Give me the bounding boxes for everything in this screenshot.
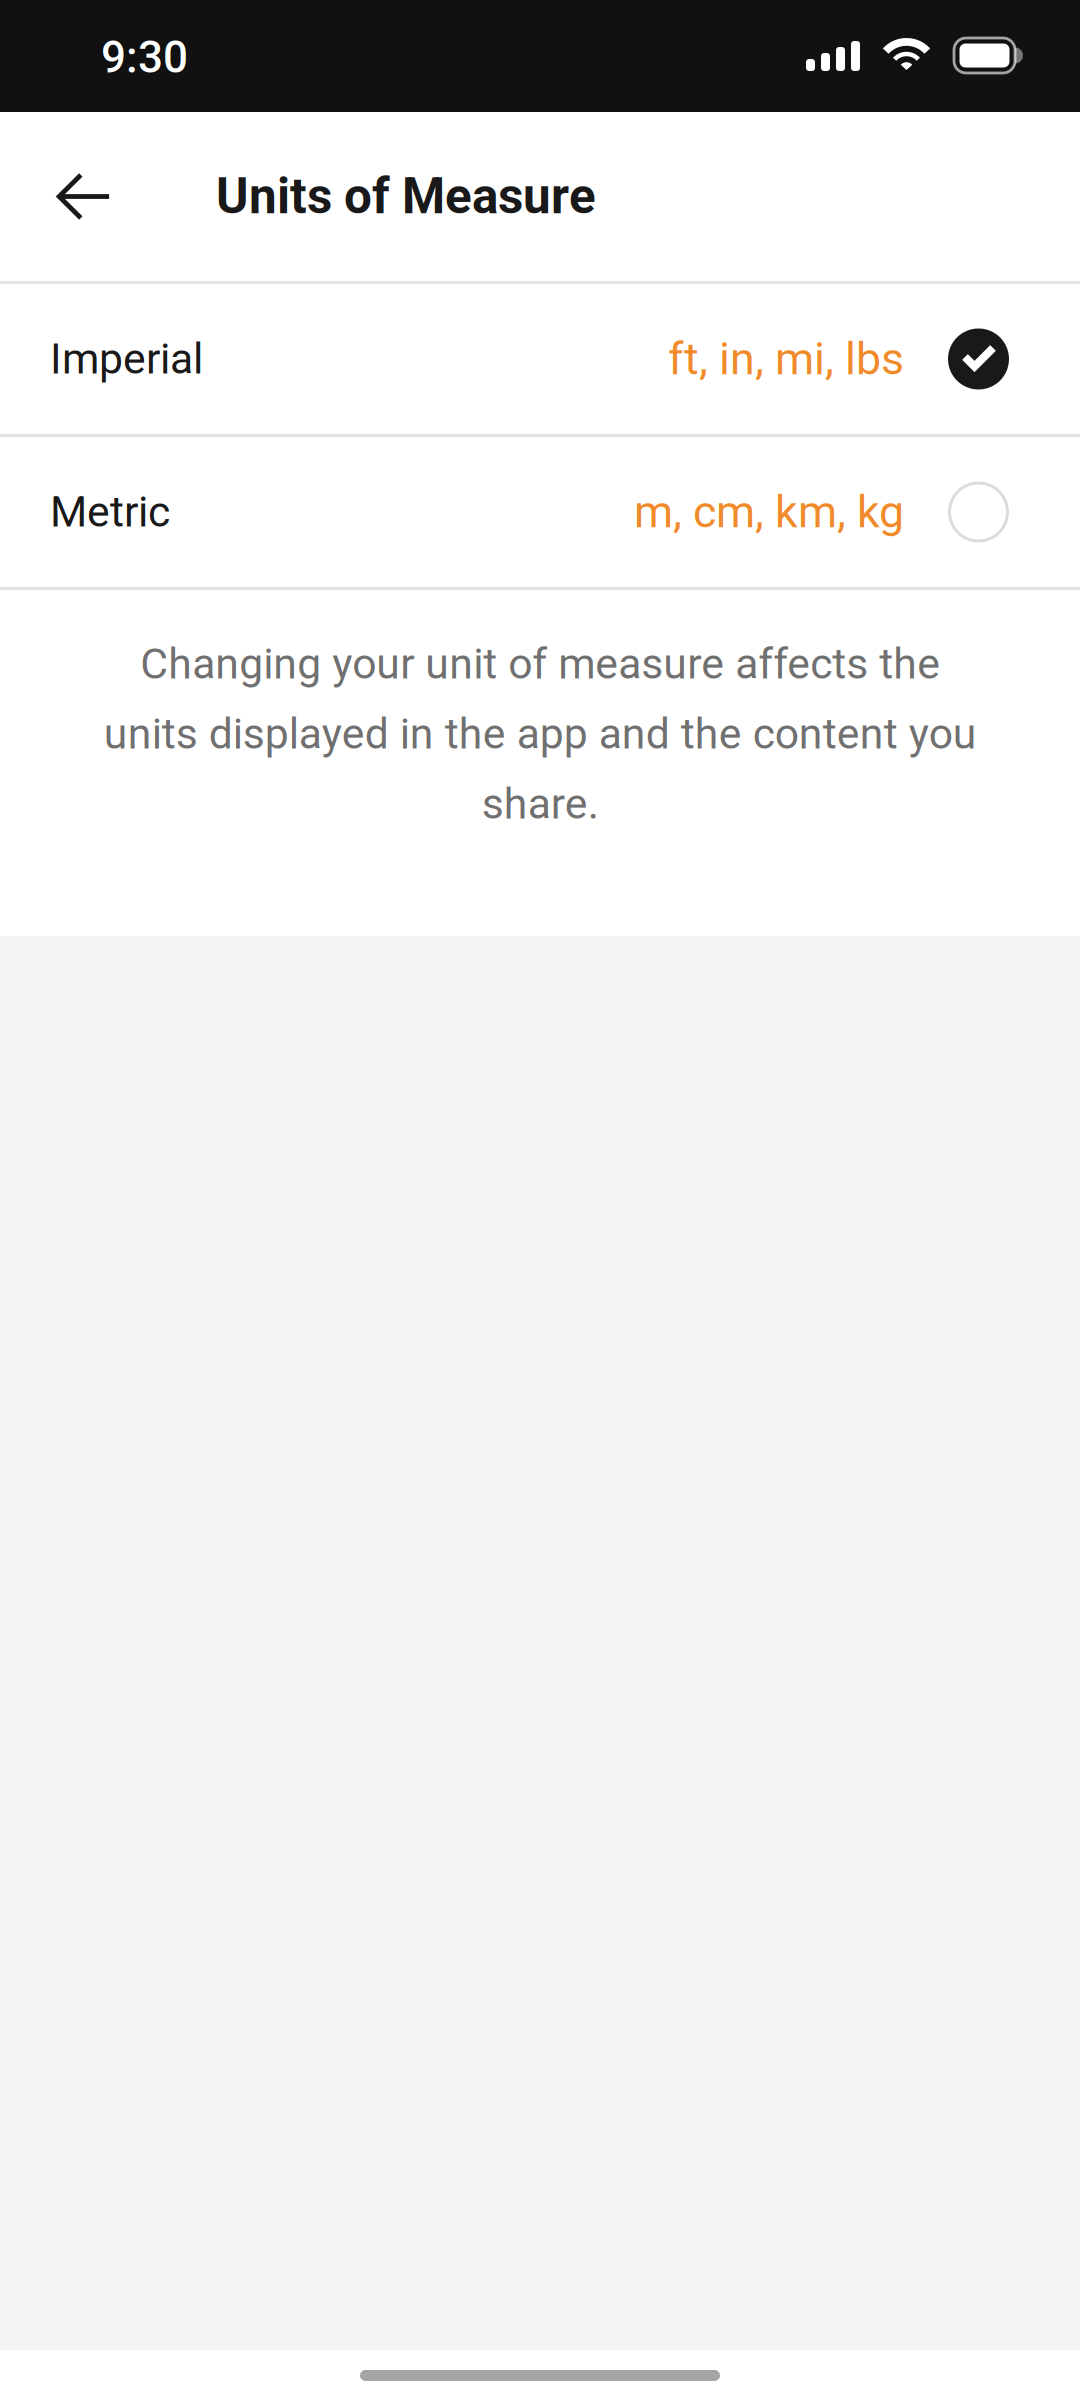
staticText: 9:30 [101, 32, 188, 83]
staticText: m, cm, km, kg [634, 486, 904, 538]
staticText: ft, in, mi, lbs [668, 333, 904, 385]
button[interactable]: Back [28, 140, 140, 252]
staticText: Changing your unit of measure affects th… [103, 639, 976, 829]
staticText: Metric [50, 487, 170, 537]
staticText: Units of Measure [216, 168, 596, 225]
button[interactable]: Metric [0, 437, 1080, 590]
staticText: Imperial [50, 334, 203, 384]
button[interactable]: Imperial [0, 284, 1080, 437]
